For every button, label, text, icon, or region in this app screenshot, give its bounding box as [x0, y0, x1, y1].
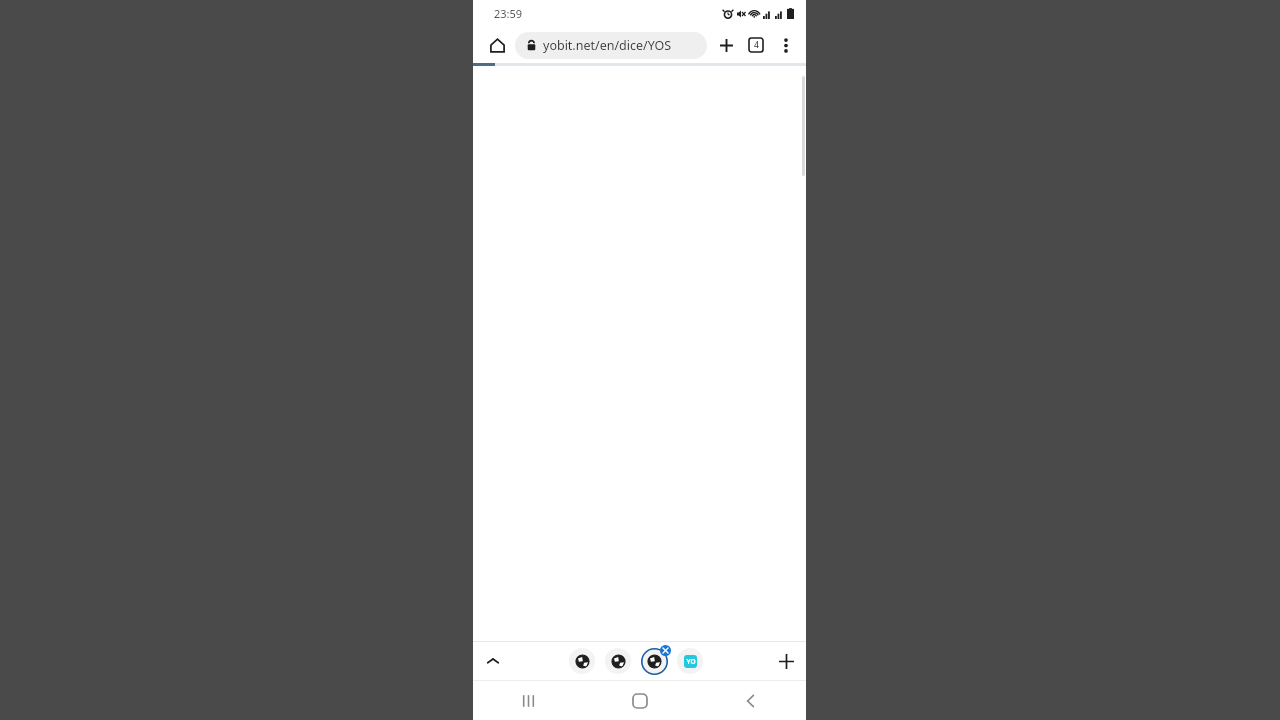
button[interactable]: Recent apps	[473, 681, 584, 720]
button[interactable]: Home	[584, 681, 695, 720]
button[interactable]: Home	[482, 30, 512, 60]
button[interactable]: Tab	[677, 648, 703, 674]
staticText: yobit.net/en/dice/YOS	[543, 37, 672, 54]
button[interactable]: New tab	[711, 30, 741, 60]
button[interactable]: Tabs, 4 open	[741, 30, 771, 60]
staticText: YO	[686, 657, 696, 666]
button[interactable]: Back	[695, 681, 806, 720]
button[interactable]: Tab	[641, 648, 667, 674]
button[interactable]: Close tab	[660, 645, 671, 656]
button[interactable]: Collapse tab bar	[479, 647, 507, 675]
button[interactable]: yobit.net/en/dice/YOS	[515, 32, 707, 59]
button[interactable]: Tab	[605, 648, 631, 674]
staticText: 4	[754, 39, 759, 51]
button[interactable]: Add tab	[772, 647, 800, 675]
button[interactable]: Tab	[569, 648, 595, 674]
staticText: 23:59	[494, 6, 523, 21]
button[interactable]: More options	[771, 30, 801, 60]
